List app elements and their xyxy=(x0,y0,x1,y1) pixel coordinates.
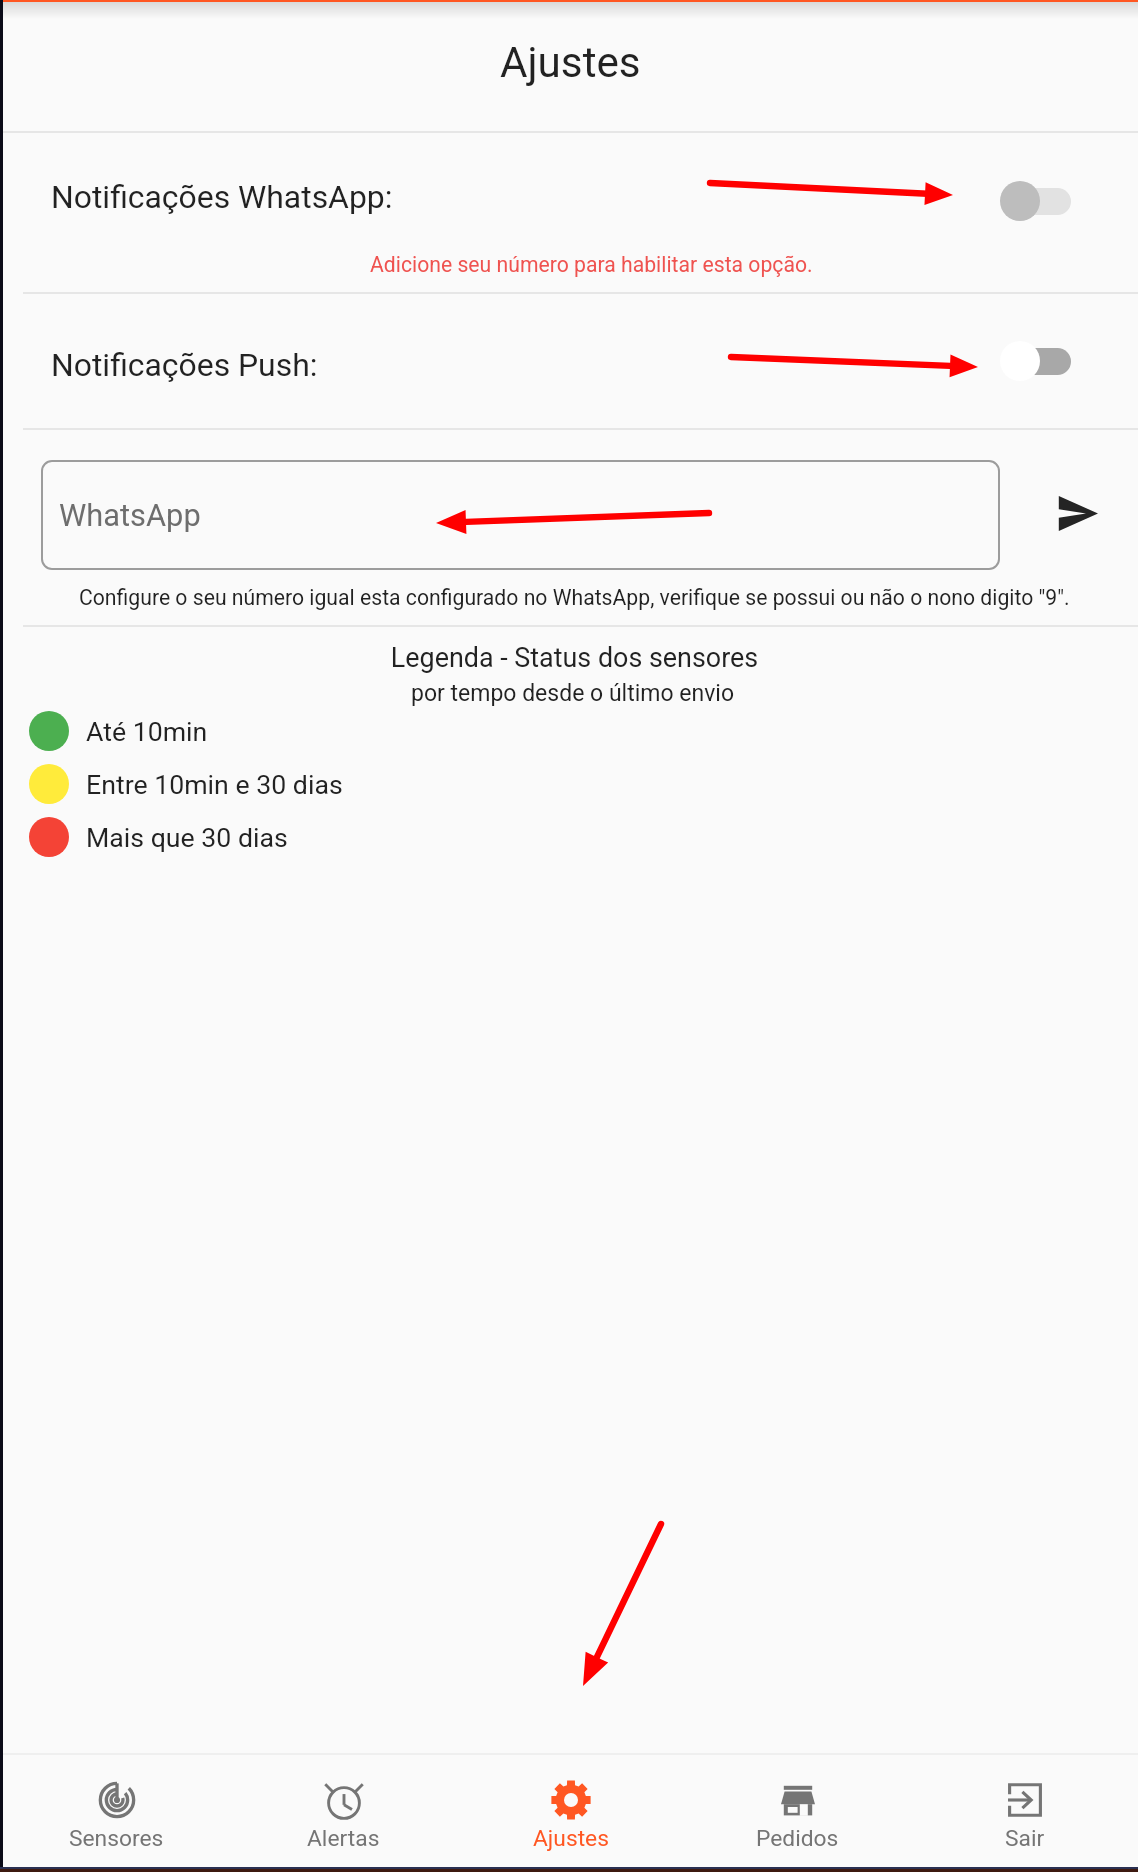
staticText: Sensores xyxy=(69,1825,164,1852)
staticText: Pedidos xyxy=(756,1825,839,1852)
staticText: Entre 10min e 30 dias xyxy=(86,769,343,800)
staticText: Sair xyxy=(1005,1825,1045,1852)
button[interactable]: WhatsApp xyxy=(41,460,1000,570)
button[interactable]: Sensores xyxy=(3,1755,230,1867)
staticText: Mais que 30 dias xyxy=(86,822,288,853)
staticText: Ajustes xyxy=(533,1825,609,1852)
staticText: Notificações Push: xyxy=(51,346,318,383)
button[interactable]: Notificações WhatsApp: xyxy=(3,133,1138,246)
button[interactable]: Alternar notificações WhatsApp xyxy=(1000,181,1071,221)
staticText: por tempo desde o último envio xyxy=(5,680,1138,707)
button[interactable]: Alternar notificações Push xyxy=(1000,341,1071,381)
staticText: Ajustes xyxy=(500,38,641,87)
button[interactable]: Pedidos xyxy=(684,1755,911,1867)
button[interactable]: Sair xyxy=(911,1755,1138,1867)
staticText: Alertas xyxy=(307,1825,380,1852)
staticText: Notificações WhatsApp: xyxy=(51,178,393,215)
button[interactable]: Enviar xyxy=(1042,477,1114,549)
staticText: Configure o seu número igual esta config… xyxy=(79,585,1070,610)
button[interactable]: Ajustes xyxy=(457,1755,684,1867)
button[interactable]: Alertas xyxy=(230,1755,457,1867)
staticText: Até 10min xyxy=(86,716,208,747)
button[interactable]: Notificações Push: xyxy=(3,294,1138,428)
staticText: Legenda - Status dos sensores xyxy=(7,642,1138,674)
staticText: Adicione seu número para habilitar esta … xyxy=(370,252,813,277)
staticText: WhatsApp xyxy=(59,497,201,533)
